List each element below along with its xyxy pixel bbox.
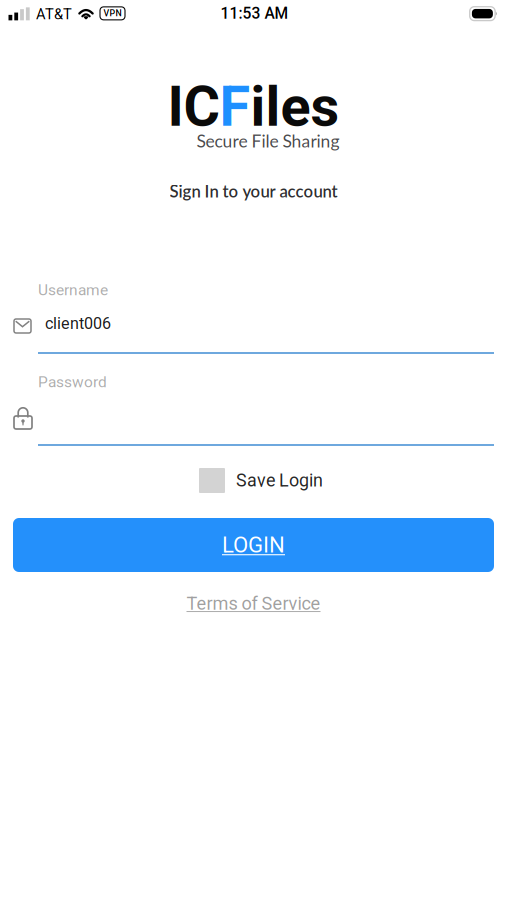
staticText: IC — [167, 74, 219, 139]
staticText: Password — [38, 373, 107, 391]
staticText: Terms of Service — [186, 593, 320, 614]
button[interactable]: Terms of Service — [0, 593, 507, 614]
staticText: AT&T — [36, 6, 72, 23]
button[interactable]: LOGIN — [13, 518, 494, 572]
staticText: 11:53 AM — [220, 4, 288, 23]
staticText: Secure File Sharing — [196, 130, 339, 151]
staticText: Username — [38, 281, 108, 299]
staticText: client006 — [45, 314, 111, 333]
staticText: VPN — [103, 8, 121, 18]
staticText: Sign In to your account — [169, 181, 337, 201]
staticText: F — [219, 74, 250, 139]
staticText: iles — [250, 74, 339, 139]
staticText: LOGIN — [222, 532, 285, 558]
button[interactable]: Save Login — [199, 468, 323, 493]
staticText: Save Login — [236, 470, 323, 491]
